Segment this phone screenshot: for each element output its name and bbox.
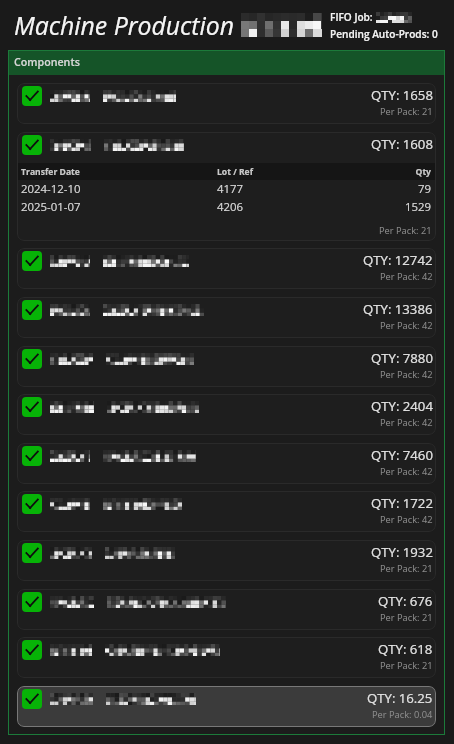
button[interactable]: Component selected [17,394,436,435]
button[interactable]: Component selected [22,251,42,271]
button[interactable]: Component selected [22,543,42,563]
button[interactable]: Component selected [22,86,42,106]
staticText: Per Pack: 42 [380,465,433,478]
staticText: Per Pack: 21 [380,105,433,118]
staticText: QTY: 2404 [371,397,433,415]
staticText: QTY: 13386 [363,300,433,318]
button[interactable]: Component selected [17,637,436,678]
button[interactable]: Component selected [22,135,42,155]
staticText: Per Pack: 42 [380,368,433,381]
staticText: FIFO Job: [330,10,373,24]
button[interactable]: Component selected [22,349,42,369]
button[interactable]: Component selected [17,248,436,289]
staticText: QTY: 676 [378,592,433,610]
staticText: QTY: 1722 [371,494,433,512]
staticText: 4206 [217,199,341,215]
button[interactable]: Component selected [17,132,436,241]
staticText: Pending Auto-Prods: 0 [330,27,438,41]
button[interactable]: Component selected [17,540,436,581]
staticText: QTY: 12742 [363,251,433,269]
staticText: QTY: 7880 [371,349,433,367]
staticText: Per Pack: 21 [379,224,432,237]
staticText: QTY: 618 [378,640,433,658]
button[interactable]: Component selected [22,300,42,320]
button[interactable]: Component selected [17,346,436,387]
staticText: Per Pack: 0.04 [372,708,433,721]
staticText: Per Pack: 42 [380,513,433,526]
button[interactable]: Component selected [17,589,436,630]
staticText: Per Pack: 42 [380,319,433,332]
staticText: Per Pack: 42 [380,416,433,429]
staticText: Machine Production [14,8,234,42]
button[interactable]: Component selected [17,443,436,484]
staticText: 2025-01-07 [21,199,217,215]
staticText: 4177 [217,181,341,197]
button[interactable]: Component selected [17,686,436,727]
staticText: Per Pack: 21 [380,611,433,624]
staticText: Qty [341,166,431,178]
button[interactable]: Component selected [17,83,436,124]
staticText: Lot / Ref [217,166,341,178]
staticText: Transfer Date [21,166,217,178]
staticText: QTY: 1608 [371,135,433,153]
button[interactable]: Component selected [22,689,42,709]
button[interactable]: Component selected [22,640,42,660]
staticText: QTY: 1658 [371,86,433,104]
staticText: QTY: 1932 [371,543,433,561]
staticText: QTY: 16.25 [367,689,433,707]
staticText: Per Pack: 21 [380,659,433,672]
staticText: Per Pack: 21 [380,562,433,575]
button[interactable]: Component selected [22,397,42,417]
staticText: Components [14,55,80,70]
button[interactable]: Component selected [22,592,42,612]
staticText: QTY: 7460 [371,446,433,464]
button[interactable]: Component selected [17,491,436,532]
staticText: 2024-12-10 [21,181,217,197]
button[interactable]: Component selected [22,494,42,514]
staticText: 79 [341,181,431,197]
button[interactable]: Component selected [22,446,42,466]
staticText: Per Pack: 42 [380,270,433,283]
button[interactable]: Component selected [17,297,436,338]
staticText: 1529 [341,199,431,215]
